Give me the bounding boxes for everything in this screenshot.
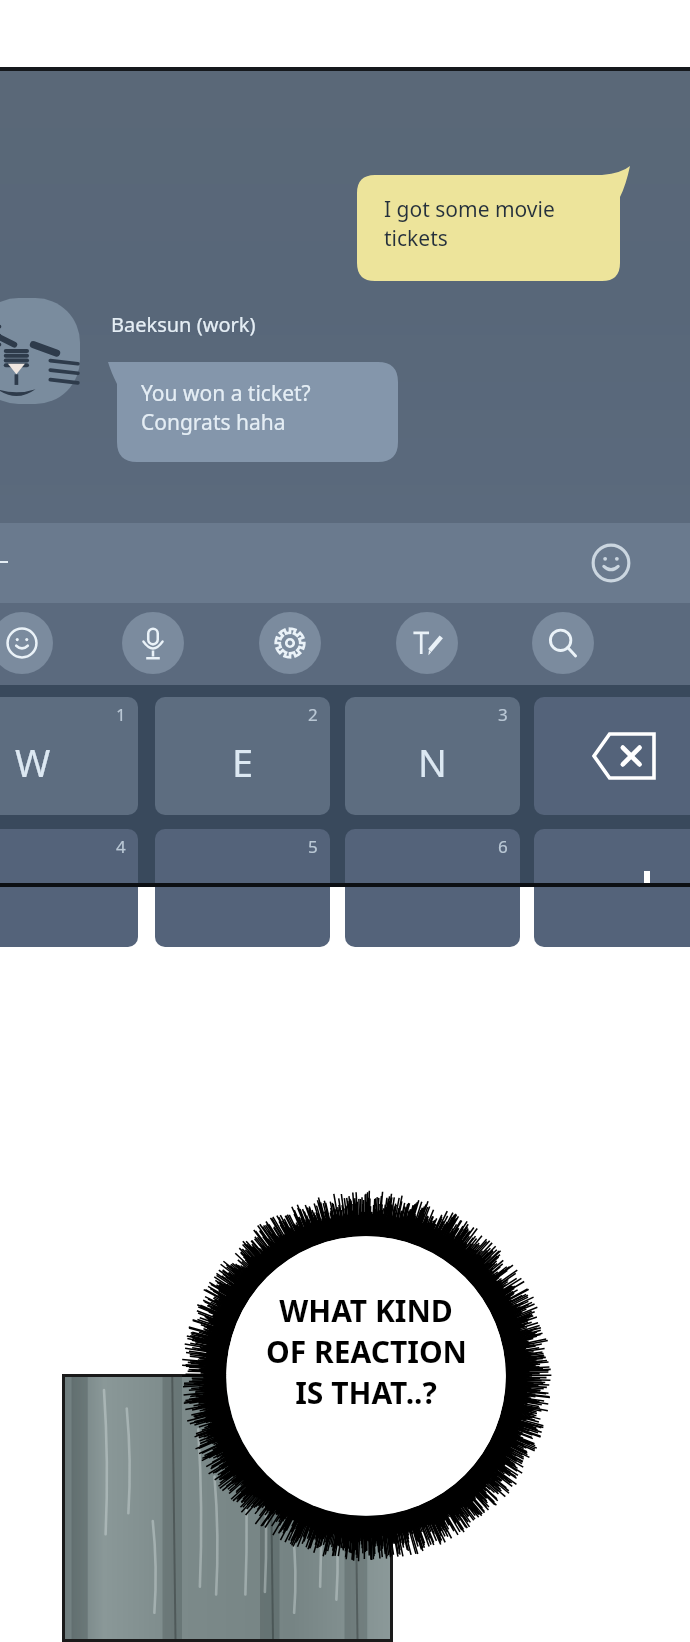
- staticText: Baeksun (work): [111, 311, 256, 338]
- staticText: 1: [116, 703, 126, 726]
- button[interactable]: Stickers: [0, 612, 53, 674]
- button[interactable]: Emoji: [590, 542, 632, 584]
- button[interactable]: 2: [155, 697, 330, 815]
- staticText: tickets: [384, 224, 448, 253]
- staticText: WHAT KIND: [279, 1290, 453, 1331]
- button[interactable]: 5: [155, 829, 330, 947]
- staticText: I got some movie: [384, 195, 555, 224]
- button[interactable]: [534, 829, 690, 947]
- staticText: 4: [116, 835, 126, 858]
- button[interactable]: Emoji: [0, 523, 690, 603]
- staticText: OF REACTION: [266, 1331, 467, 1372]
- button[interactable]: Keyboard settings: [259, 612, 321, 674]
- button[interactable]: Delete: [534, 697, 690, 815]
- staticText: 2: [308, 703, 318, 726]
- button[interactable]: 3: [345, 697, 520, 815]
- staticText: IS THAT..?: [295, 1372, 437, 1413]
- button[interactable]: 4: [0, 829, 138, 947]
- staticText: 3: [498, 703, 508, 726]
- button[interactable]: Search: [532, 612, 594, 674]
- button[interactable]: 6: [345, 829, 520, 947]
- staticText: 6: [498, 835, 508, 858]
- staticText: E: [232, 736, 254, 788]
- button[interactable]: 1: [0, 697, 138, 815]
- staticText: You won a ticket?: [141, 379, 311, 408]
- staticText: W: [15, 736, 51, 788]
- button[interactable]: Voice input: [122, 612, 184, 674]
- button[interactable]: Handwriting: [396, 612, 458, 674]
- staticText: Congrats haha: [141, 408, 286, 437]
- staticText: N: [418, 736, 447, 788]
- staticText: 5: [308, 835, 318, 858]
